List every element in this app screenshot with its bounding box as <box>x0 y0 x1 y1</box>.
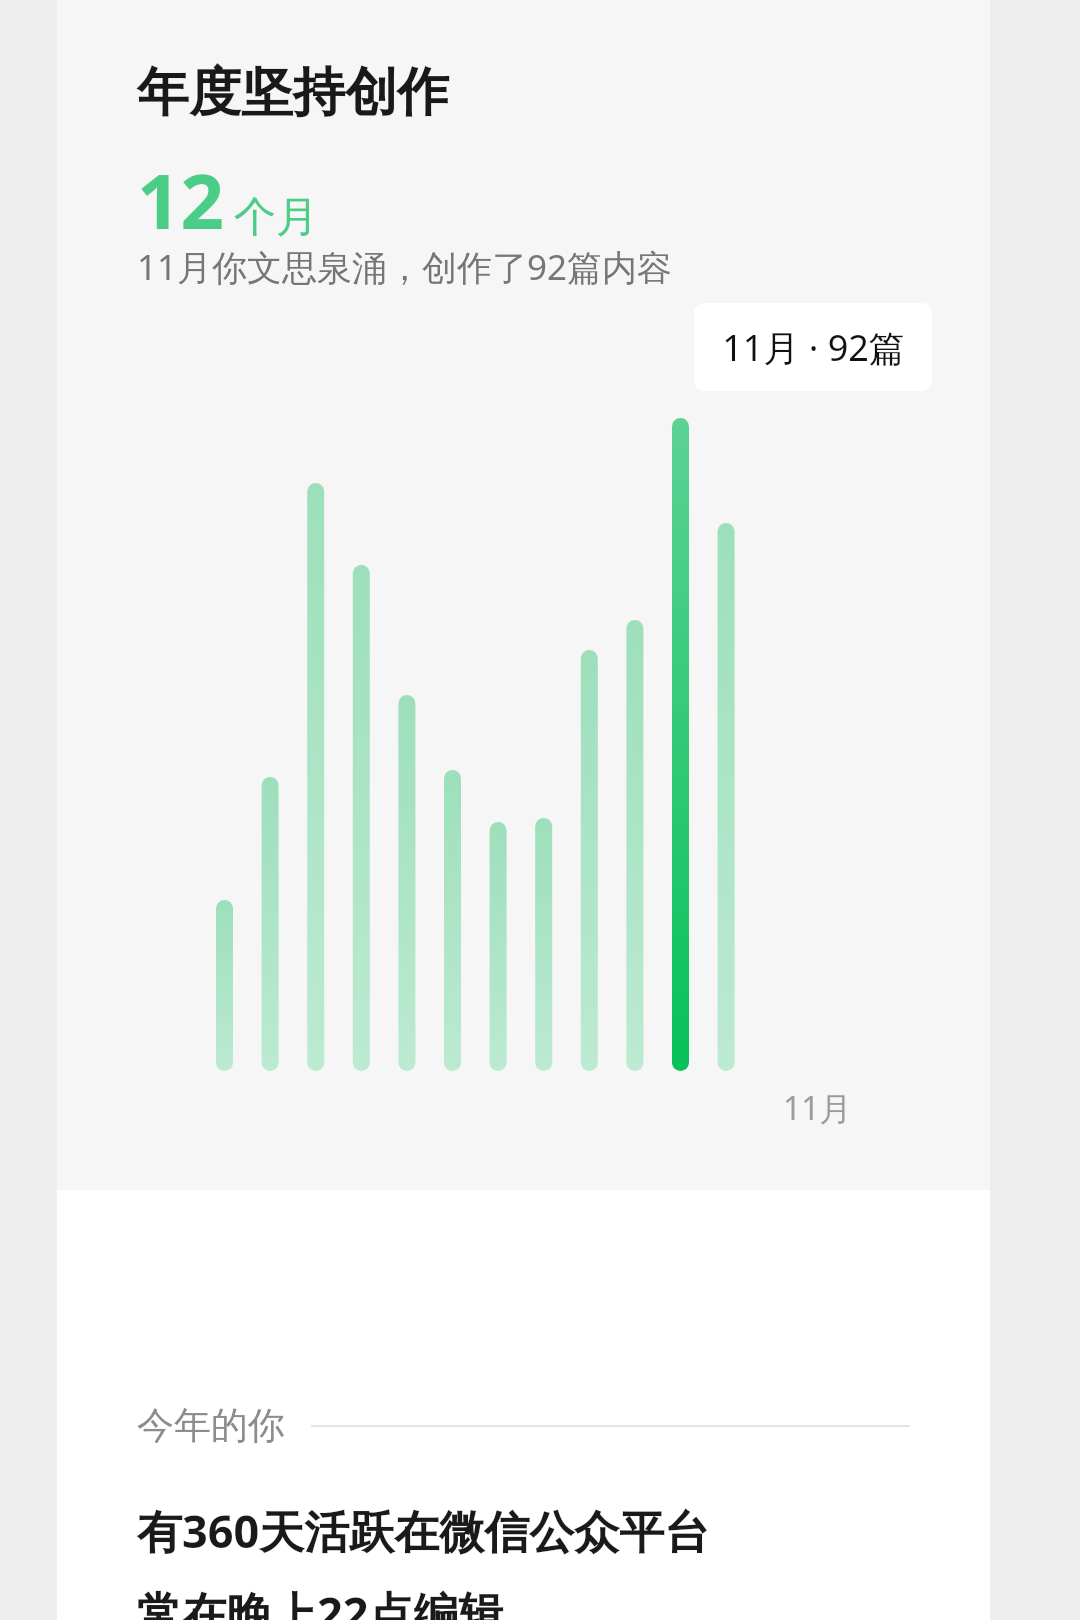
staticText: 11月 · 92篇 <box>722 323 905 372</box>
staticText: 个月 <box>234 191 318 244</box>
staticText: 有360天活跃在微信公众平台 <box>137 1500 710 1561</box>
staticText: 12 <box>137 148 224 252</box>
staticText: 今年的你 <box>137 1402 285 1449</box>
button[interactable]: 11月 · 92篇 <box>694 303 932 391</box>
staticText: 11月 <box>783 1086 852 1130</box>
other: Monthly publishing chart <box>159 410 959 1071</box>
staticText: 年度坚持创作 <box>137 60 449 126</box>
staticText: 11月你文思泉涌，创作了92篇内容 <box>137 243 673 291</box>
staticText: 常在晚上22点编辑 <box>137 1582 504 1620</box>
